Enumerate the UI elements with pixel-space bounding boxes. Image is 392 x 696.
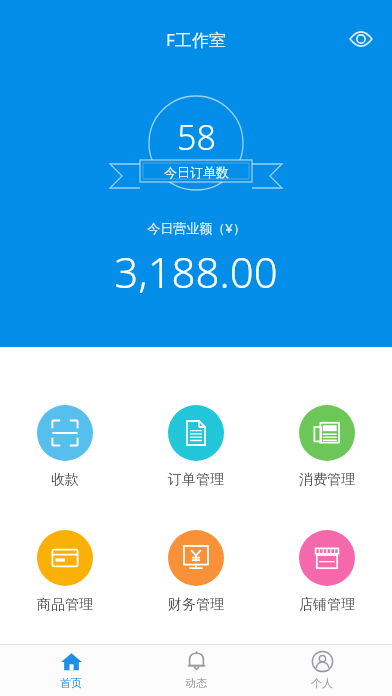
- button[interactable]: 首页: [16, 650, 126, 690]
- button[interactable]: 消费管理: [261, 405, 392, 489]
- staticText: 店铺管理: [299, 596, 355, 614]
- staticText: 动态: [185, 676, 207, 690]
- staticText: 今日订单数: [164, 164, 229, 180]
- button[interactable]: 动态: [141, 650, 251, 690]
- button[interactable]: 店铺管理: [261, 530, 392, 614]
- staticText: 首页: [60, 676, 82, 690]
- button[interactable]: 商品管理: [0, 530, 130, 614]
- staticText: 今日营业额（¥）: [147, 219, 246, 237]
- staticText: 58: [177, 114, 216, 160]
- button[interactable]: 收款: [0, 405, 130, 489]
- button[interactable]: Toggle visibility: [344, 22, 378, 56]
- staticText: 消费管理: [299, 471, 355, 489]
- staticText: 财务管理: [168, 596, 224, 614]
- button[interactable]: 财务管理: [130, 530, 261, 614]
- staticText: 收款: [51, 471, 79, 489]
- staticText: 3,188.00: [114, 243, 278, 300]
- staticText: 个人: [311, 676, 333, 690]
- button[interactable]: 订单管理: [130, 405, 261, 489]
- button[interactable]: 个人: [267, 650, 377, 690]
- staticText: 商品管理: [37, 596, 93, 614]
- staticText: F工作室: [166, 28, 226, 51]
- staticText: 订单管理: [168, 471, 224, 489]
